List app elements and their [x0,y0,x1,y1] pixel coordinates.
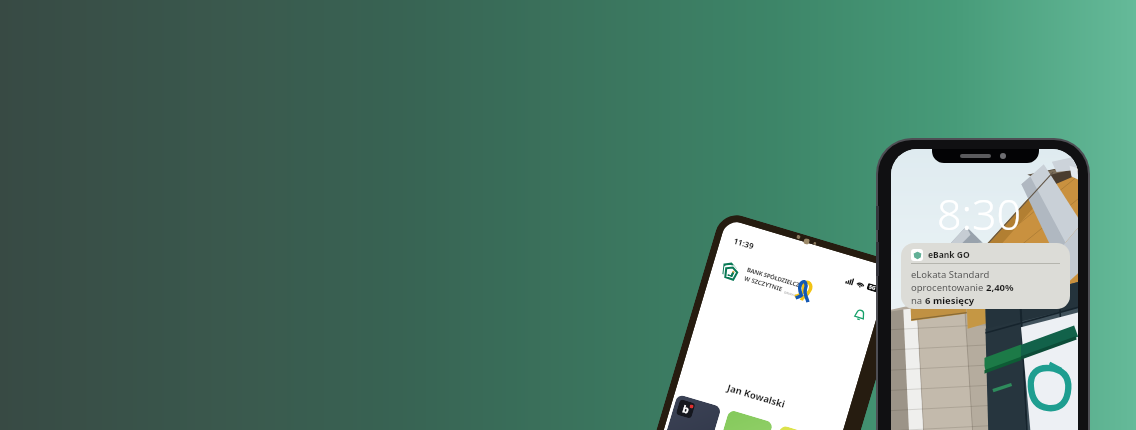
staticText: 6 miesięcy [925,294,975,307]
button[interactable]: Notifications [846,301,873,328]
staticText: BANK SPÓŁDZIELCZY [746,266,805,290]
staticText: 5G [868,283,877,292]
staticText: 2,40% [986,281,1014,294]
button[interactable] [712,409,773,430]
staticText: 11:39 [732,235,756,251]
staticText: oprocentowanie [911,281,986,294]
staticText: W SZCZYTNIE [743,274,784,293]
staticText: eLokata Standard [911,268,990,281]
staticText: na [911,294,925,307]
staticText: b [681,401,691,417]
staticText: Jan Kowalski [726,381,787,411]
staticText: eBank GO [928,249,970,261]
button[interactable]: b [660,394,722,430]
staticText: GRUPA BPS [783,290,801,299]
button[interactable] [764,425,825,430]
button[interactable]: eBank GO [901,243,1070,309]
staticText: 8:30 [937,184,1022,243]
